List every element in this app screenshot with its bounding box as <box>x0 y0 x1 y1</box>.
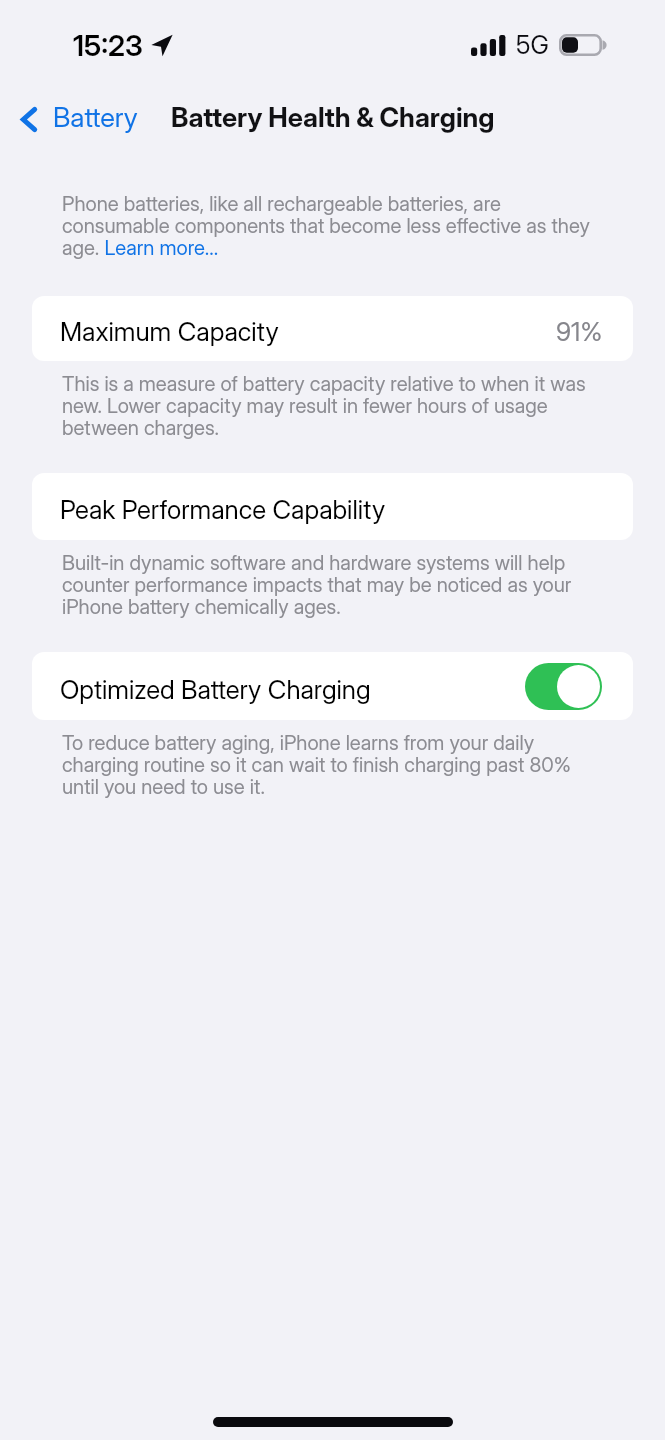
staticText: 15:23 <box>73 28 143 63</box>
other: Location services active <box>151 33 174 57</box>
staticText: This is a measure of battery capacity re… <box>62 373 593 439</box>
other: Battery level <box>559 34 607 56</box>
button[interactable]: Maximum Capacity <box>32 296 633 361</box>
button[interactable]: Optimized Battery Charging <box>32 652 633 720</box>
staticText: 5G <box>516 30 549 60</box>
button[interactable]: Phone batteries, like all rechargeable b… <box>62 193 593 259</box>
staticText: 91% <box>556 316 603 347</box>
staticText: To reduce battery aging, iPhone learns f… <box>62 732 593 798</box>
staticText: Battery Health & Charging <box>171 101 495 134</box>
staticText: Phone batteries, like all rechargeable b… <box>62 193 593 259</box>
staticText: Battery <box>53 101 138 134</box>
other: Cellular signal, 4 bars <box>471 35 504 56</box>
staticText: Optimized Battery Charging <box>60 674 371 705</box>
staticText: Maximum Capacity <box>60 316 279 347</box>
button[interactable]: Back to Battery <box>0 93 148 142</box>
button[interactable]: Peak Performance Capability <box>32 473 633 540</box>
staticText: Built-in dynamic software and hardware s… <box>62 552 593 618</box>
staticText: Peak Performance Capability <box>60 494 386 525</box>
button[interactable]: Optimized Battery Charging, on <box>525 663 602 710</box>
